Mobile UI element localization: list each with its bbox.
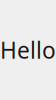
staticText: Hello [0, 35, 56, 65]
